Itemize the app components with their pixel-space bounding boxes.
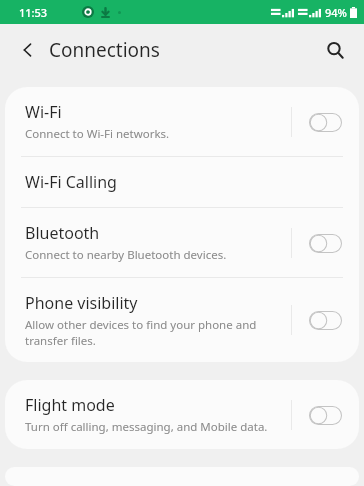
staticText: 11:53 [19, 5, 48, 20]
staticText: Connections [49, 37, 160, 63]
button[interactable]: Toggle Wi-Fi [305, 107, 345, 137]
button[interactable]: Toggle Flight mode [305, 400, 345, 430]
button[interactable]: Back [11, 33, 45, 67]
staticText: Connect to nearby Bluetooth devices. [25, 247, 227, 263]
staticText: Wi-Fi Calling [25, 171, 117, 193]
staticText: Flight mode [25, 394, 115, 416]
button[interactable]: Toggle Bluetooth [305, 228, 345, 258]
staticText: Bluetooth [25, 222, 100, 244]
button[interactable]: Phone visibility [5, 278, 359, 362]
staticText: Allow other devices to find your phone a… [25, 317, 291, 348]
button[interactable]: Flight mode [5, 380, 359, 449]
staticText: 94% [325, 5, 347, 20]
staticText: Wi-Fi [25, 101, 62, 123]
button[interactable]: Bluetooth [5, 208, 359, 277]
button[interactable]: Search [317, 32, 353, 68]
staticText: Phone visibility [25, 292, 138, 314]
button[interactable]: Wi-Fi [5, 87, 359, 156]
button[interactable]: Wi-Fi Calling [5, 157, 359, 207]
button[interactable]: Toggle Phone visibility [305, 305, 345, 335]
staticText: Turn off calling, messaging, and Mobile … [25, 419, 268, 435]
staticText: Connect to Wi-Fi networks. [25, 126, 170, 142]
